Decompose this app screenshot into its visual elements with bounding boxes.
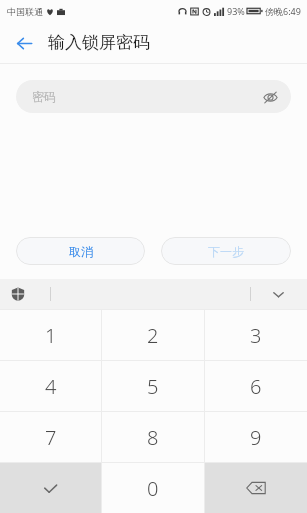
button[interactable]: 收起键盘 bbox=[265, 281, 291, 307]
staticText: 0 bbox=[147, 475, 159, 502]
staticText: 8 bbox=[147, 424, 159, 451]
button[interactable]: 7 bbox=[0, 412, 101, 462]
button[interactable]: 5 bbox=[102, 361, 204, 411]
button[interactable]: 2 bbox=[102, 310, 204, 360]
staticText: 输入锁屏密码 bbox=[48, 32, 150, 53]
staticText: 2 bbox=[147, 322, 159, 349]
button[interactable]: 0 bbox=[102, 463, 204, 513]
staticText: 5 bbox=[147, 373, 159, 400]
staticText: 密码 bbox=[32, 89, 56, 104]
button[interactable]: 6 bbox=[205, 361, 307, 411]
staticText: 7 bbox=[45, 424, 57, 451]
button[interactable]: 安全输入 bbox=[6, 282, 30, 306]
button[interactable]: 删除 bbox=[205, 463, 307, 513]
button[interactable]: 显示密码 bbox=[257, 84, 283, 110]
button[interactable]: 9 bbox=[205, 412, 307, 462]
staticText: 取消 bbox=[69, 244, 93, 259]
staticText: 4 bbox=[45, 373, 57, 400]
staticText: 下一步 bbox=[208, 244, 244, 259]
button[interactable]: 取消 bbox=[16, 237, 145, 265]
button[interactable]: 密码 bbox=[16, 80, 291, 113]
button[interactable]: 下一步 bbox=[161, 237, 291, 265]
staticText: 1 bbox=[45, 322, 57, 349]
button[interactable]: 4 bbox=[0, 361, 101, 411]
staticText: 3 bbox=[250, 322, 262, 349]
staticText: 傍晚6:49 bbox=[265, 5, 301, 17]
button[interactable]: 1 bbox=[0, 310, 101, 360]
staticText: 中国联通 bbox=[7, 6, 43, 17]
button[interactable]: 8 bbox=[102, 412, 204, 462]
button[interactable]: 3 bbox=[205, 310, 307, 360]
staticText: 9 bbox=[250, 424, 262, 451]
button[interactable]: 返回 bbox=[6, 25, 42, 61]
staticText: 6 bbox=[250, 373, 262, 400]
staticText: 93% bbox=[227, 5, 245, 17]
button[interactable]: 确定 bbox=[0, 463, 101, 513]
